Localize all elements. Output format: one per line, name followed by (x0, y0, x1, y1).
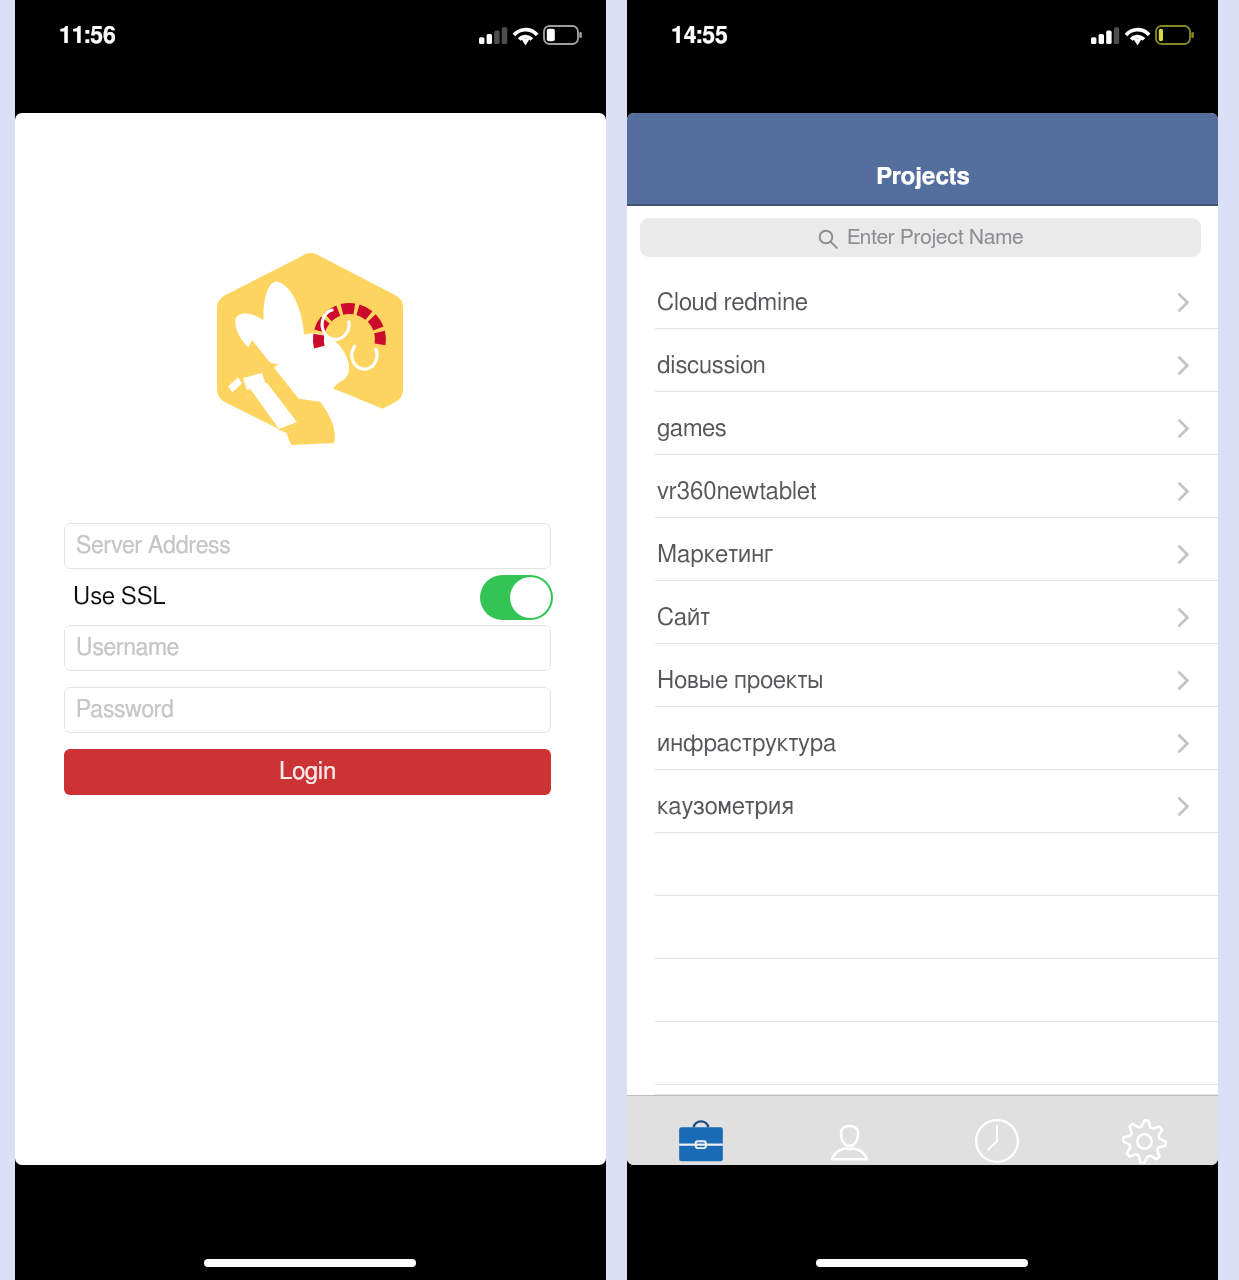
staticText: Login (279, 760, 337, 784)
staticText: discussion (657, 354, 766, 378)
staticText: games (657, 417, 727, 441)
button[interactable]: Time tracking (923, 1095, 1071, 1165)
button[interactable]: каузометрия (627, 770, 1218, 833)
staticText: 11:56 (59, 25, 116, 48)
staticText: Сайт (657, 606, 711, 630)
staticText: 14:55 (671, 25, 728, 48)
staticText: Password (76, 699, 174, 722)
button[interactable]: Server Address (64, 523, 551, 569)
button[interactable]: vr360newtablet (627, 455, 1218, 518)
button[interactable]: инфраструктура (627, 707, 1218, 770)
staticText: Username (76, 637, 179, 660)
button[interactable]: Username (64, 625, 551, 671)
staticText: Server Address (76, 535, 231, 558)
button[interactable]: Settings (1071, 1095, 1218, 1165)
button[interactable]: Cloud redmine (627, 266, 1218, 329)
staticText: Enter Project Name (847, 227, 1024, 248)
staticText: Cloud redmine (657, 291, 808, 315)
staticText: Use SSL (73, 585, 166, 609)
button[interactable]: Use SSL (64, 574, 551, 620)
staticText: инфраструктура (657, 732, 837, 756)
button[interactable]: discussion (627, 329, 1218, 392)
button[interactable] (480, 575, 553, 620)
button[interactable]: Новые проекты (627, 644, 1218, 707)
button[interactable]: Projects (627, 1095, 775, 1165)
button[interactable]: Password (64, 687, 551, 733)
button[interactable]: Account (775, 1095, 923, 1165)
staticText: Новые проекты (657, 669, 824, 693)
staticText: Маркетинг (657, 543, 774, 567)
button[interactable]: Enter Project Name (640, 218, 1201, 257)
staticText: Projects (876, 165, 970, 189)
button[interactable]: games (627, 392, 1218, 455)
staticText: каузометрия (657, 795, 794, 819)
staticText: vr360newtablet (657, 480, 817, 504)
button[interactable]: Сайт (627, 581, 1218, 644)
button[interactable]: Login (64, 749, 551, 795)
button[interactable]: Маркетинг (627, 518, 1218, 581)
